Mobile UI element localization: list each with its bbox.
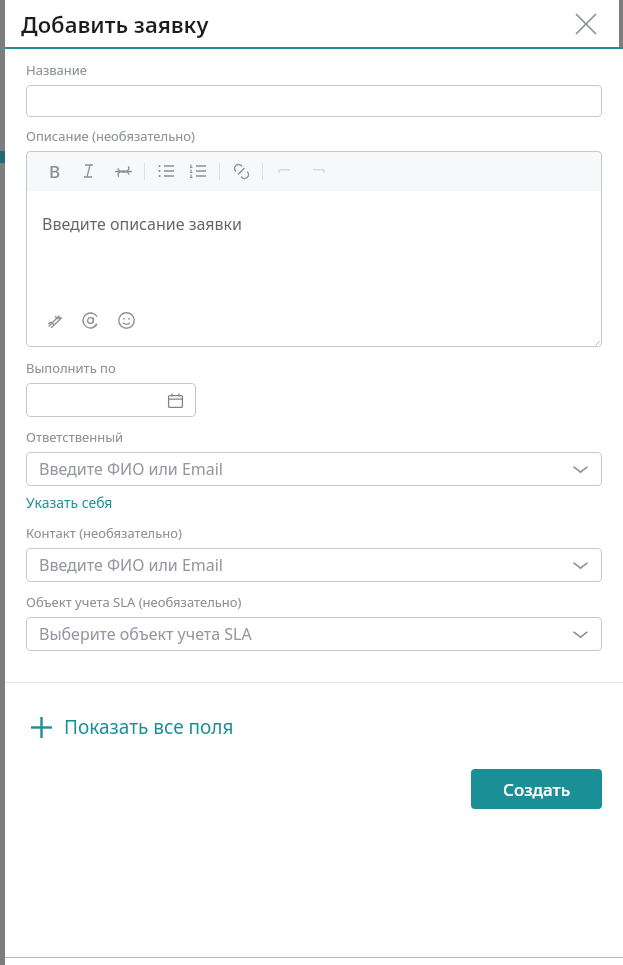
staticText: Введите ФИО или Email bbox=[39, 554, 224, 576]
button[interactable]: Bulleted list bbox=[153, 158, 179, 184]
staticText: Название bbox=[26, 61, 88, 79]
button[interactable]: Выберите объект учета SLA bbox=[26, 617, 602, 651]
staticText: Указать себя bbox=[26, 493, 113, 512]
button[interactable]: Указать себя bbox=[26, 491, 113, 514]
staticText: Выберите объект учета SLA bbox=[39, 623, 252, 645]
staticText: Показать все поля bbox=[64, 714, 234, 740]
button[interactable]: Bold bbox=[42, 158, 68, 184]
button[interactable]: Insert link bbox=[228, 158, 254, 184]
staticText: Объект учета SLA (необязательно) bbox=[26, 593, 242, 611]
button[interactable]: Создать bbox=[471, 769, 602, 809]
staticText: Введите ФИО или Email bbox=[39, 458, 224, 480]
button[interactable]: Undo bbox=[271, 158, 297, 184]
button[interactable]: Emoji bbox=[113, 307, 139, 333]
staticText: Описание (необязательно) bbox=[26, 127, 195, 145]
button[interactable]: Close bbox=[571, 9, 601, 39]
staticText: Добавить заявку bbox=[21, 9, 209, 39]
button[interactable]: Redo bbox=[305, 158, 331, 184]
staticText: Ответственный bbox=[26, 428, 124, 446]
staticText: Создать bbox=[503, 778, 571, 801]
button[interactable] bbox=[26, 85, 602, 117]
button[interactable]: Mention bbox=[77, 307, 103, 333]
staticText: Контакт (необязательно) bbox=[26, 524, 182, 542]
button[interactable]: Attach file bbox=[41, 307, 67, 333]
button[interactable]: Показать все поля bbox=[31, 710, 234, 744]
staticText: B bbox=[49, 160, 61, 183]
button[interactable]: Italic bbox=[76, 158, 102, 184]
button[interactable]: Strikethrough bbox=[110, 158, 136, 184]
button[interactable]: Pick date bbox=[26, 383, 196, 417]
staticText: Введите описание заявки bbox=[42, 213, 243, 235]
staticText: Выполнить по bbox=[26, 359, 116, 377]
button[interactable]: Numbered list bbox=[185, 158, 211, 184]
button[interactable]: Введите ФИО или Email bbox=[26, 452, 602, 486]
button[interactable]: Введите ФИО или Email bbox=[26, 548, 602, 582]
